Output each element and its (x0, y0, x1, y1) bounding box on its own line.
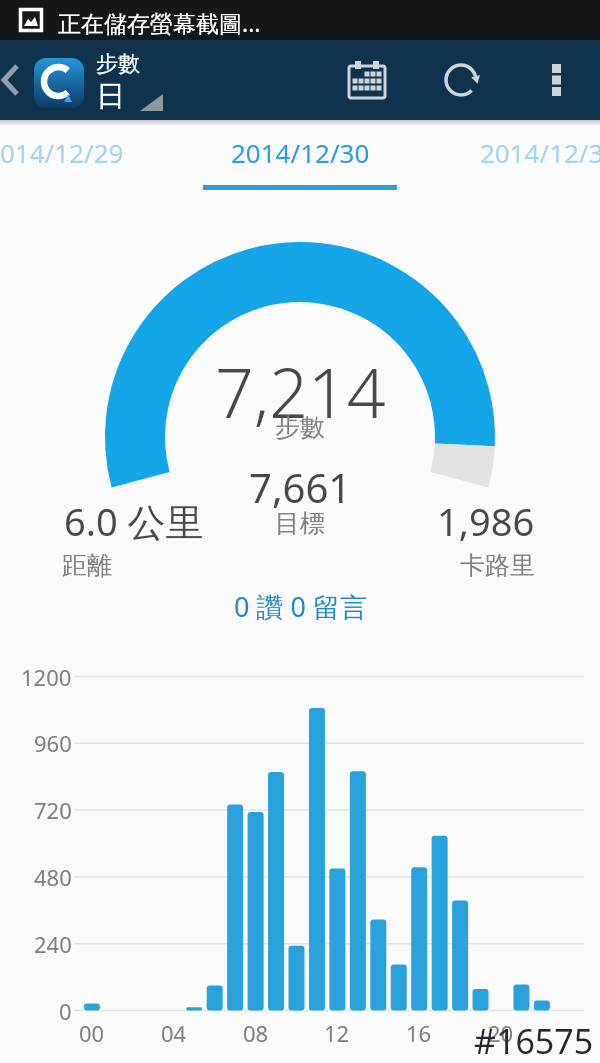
staticText: 20 (488, 1018, 514, 1048)
staticText: 步數 (275, 412, 325, 443)
staticText: 12 (324, 1018, 350, 1048)
button[interactable]: 2014/12/30 (190, 120, 410, 190)
staticText: 目標 (275, 508, 325, 539)
staticText: 960 (34, 728, 72, 758)
staticText: 16 (406, 1018, 432, 1048)
staticText: #16575 (474, 1018, 594, 1063)
staticText: 08 (243, 1018, 269, 1048)
staticText: 480 (34, 862, 72, 892)
button[interactable]: 0 讚 0 留言 (234, 588, 367, 625)
button[interactable] (0, 40, 24, 120)
staticText: 1200 (21, 662, 72, 692)
staticText: 0 (59, 996, 72, 1026)
staticText: 7,214 (215, 345, 386, 438)
staticText: 距離 (62, 550, 112, 581)
button[interactable] (536, 52, 576, 108)
staticText: 7,661 (249, 460, 352, 514)
staticText: 卡路里 (460, 550, 535, 581)
staticText: 6.0 公里 (64, 495, 204, 547)
staticText: 240 (34, 929, 72, 959)
staticText: 00 (79, 1018, 105, 1048)
staticText: 720 (34, 795, 72, 825)
button[interactable] (433, 52, 489, 108)
button[interactable] (339, 52, 395, 108)
staticText: 2014/12/31 (480, 135, 600, 170)
button[interactable]: 步數 (96, 50, 140, 115)
staticText: 1,986 (437, 495, 535, 547)
button[interactable]: 2014/12/31 (420, 120, 600, 190)
staticText: 日 (96, 78, 125, 115)
staticText: 正在儲存螢幕截圖... (58, 7, 261, 38)
button[interactable] (34, 58, 84, 108)
staticText: 04 (161, 1018, 187, 1048)
staticText: 步數 (96, 50, 140, 78)
button[interactable]: 014/12/29 (0, 120, 180, 190)
staticText: 014/12/29 (0, 135, 124, 170)
staticText: 2014/12/30 (231, 135, 370, 170)
